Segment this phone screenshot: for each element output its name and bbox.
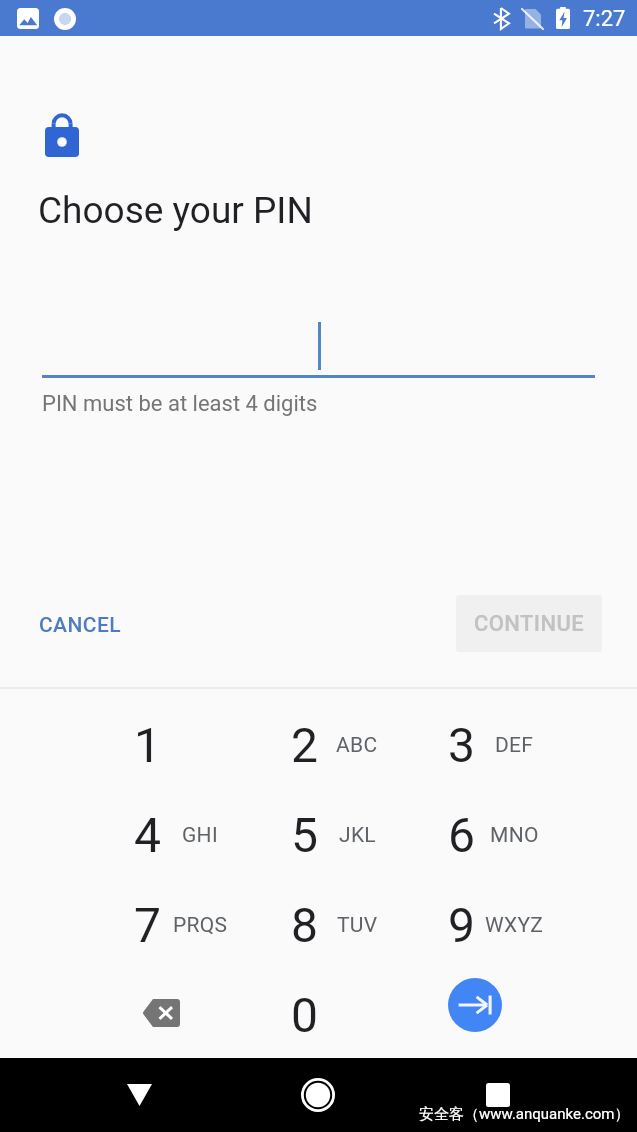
button[interactable]: Home bbox=[283, 1060, 353, 1130]
button[interactable]: Next bbox=[448, 978, 502, 1032]
staticText: Choose your PIN bbox=[38, 189, 313, 232]
button[interactable]: Recents bbox=[463, 1060, 533, 1130]
staticText: JKL bbox=[339, 823, 376, 848]
button[interactable]: 3 bbox=[355, 687, 567, 777]
staticText: 9 bbox=[448, 897, 475, 953]
staticText: TUV bbox=[337, 913, 378, 938]
staticText: CONTINUE bbox=[474, 611, 585, 637]
staticText: 0 bbox=[291, 987, 318, 1043]
staticText: PRQS bbox=[173, 913, 228, 938]
button[interactable]: 1 bbox=[41, 687, 253, 777]
staticText: 7:27 bbox=[583, 6, 626, 32]
staticText: WXYZ bbox=[485, 913, 544, 938]
button[interactable]: 4 bbox=[41, 777, 253, 867]
staticText: PIN must be at least 4 digits bbox=[42, 391, 318, 417]
button[interactable]: Backspace bbox=[41, 957, 253, 1047]
staticText: 5 bbox=[291, 807, 318, 863]
staticText: ABC bbox=[336, 733, 378, 758]
button[interactable]: 2 bbox=[198, 687, 410, 777]
button[interactable]: 9 bbox=[355, 867, 567, 957]
staticText: GHI bbox=[182, 823, 218, 848]
button[interactable]: 8 bbox=[198, 867, 410, 957]
button[interactable]: CONTINUE bbox=[456, 595, 602, 652]
staticText: 1 bbox=[134, 717, 161, 773]
staticText: 安全客（www.anquanke.com） bbox=[419, 1105, 630, 1124]
staticText: 7 bbox=[134, 897, 161, 953]
staticText: 2 bbox=[291, 717, 318, 773]
button[interactable]: Back bbox=[104, 1060, 174, 1130]
staticText: CANCEL bbox=[39, 613, 121, 638]
button[interactable]: CANCEL bbox=[24, 603, 136, 648]
staticText: 3 bbox=[448, 717, 475, 773]
staticText: 6 bbox=[448, 807, 475, 863]
staticText: 4 bbox=[134, 807, 161, 863]
button[interactable]: 7 bbox=[41, 867, 253, 957]
button[interactable]: 0 bbox=[198, 957, 410, 1047]
button[interactable]: 5 bbox=[198, 777, 410, 867]
button[interactable]: 6 bbox=[355, 777, 567, 867]
staticText: MNO bbox=[490, 823, 539, 848]
staticText: 8 bbox=[291, 897, 318, 953]
staticText: DEF bbox=[495, 733, 534, 758]
